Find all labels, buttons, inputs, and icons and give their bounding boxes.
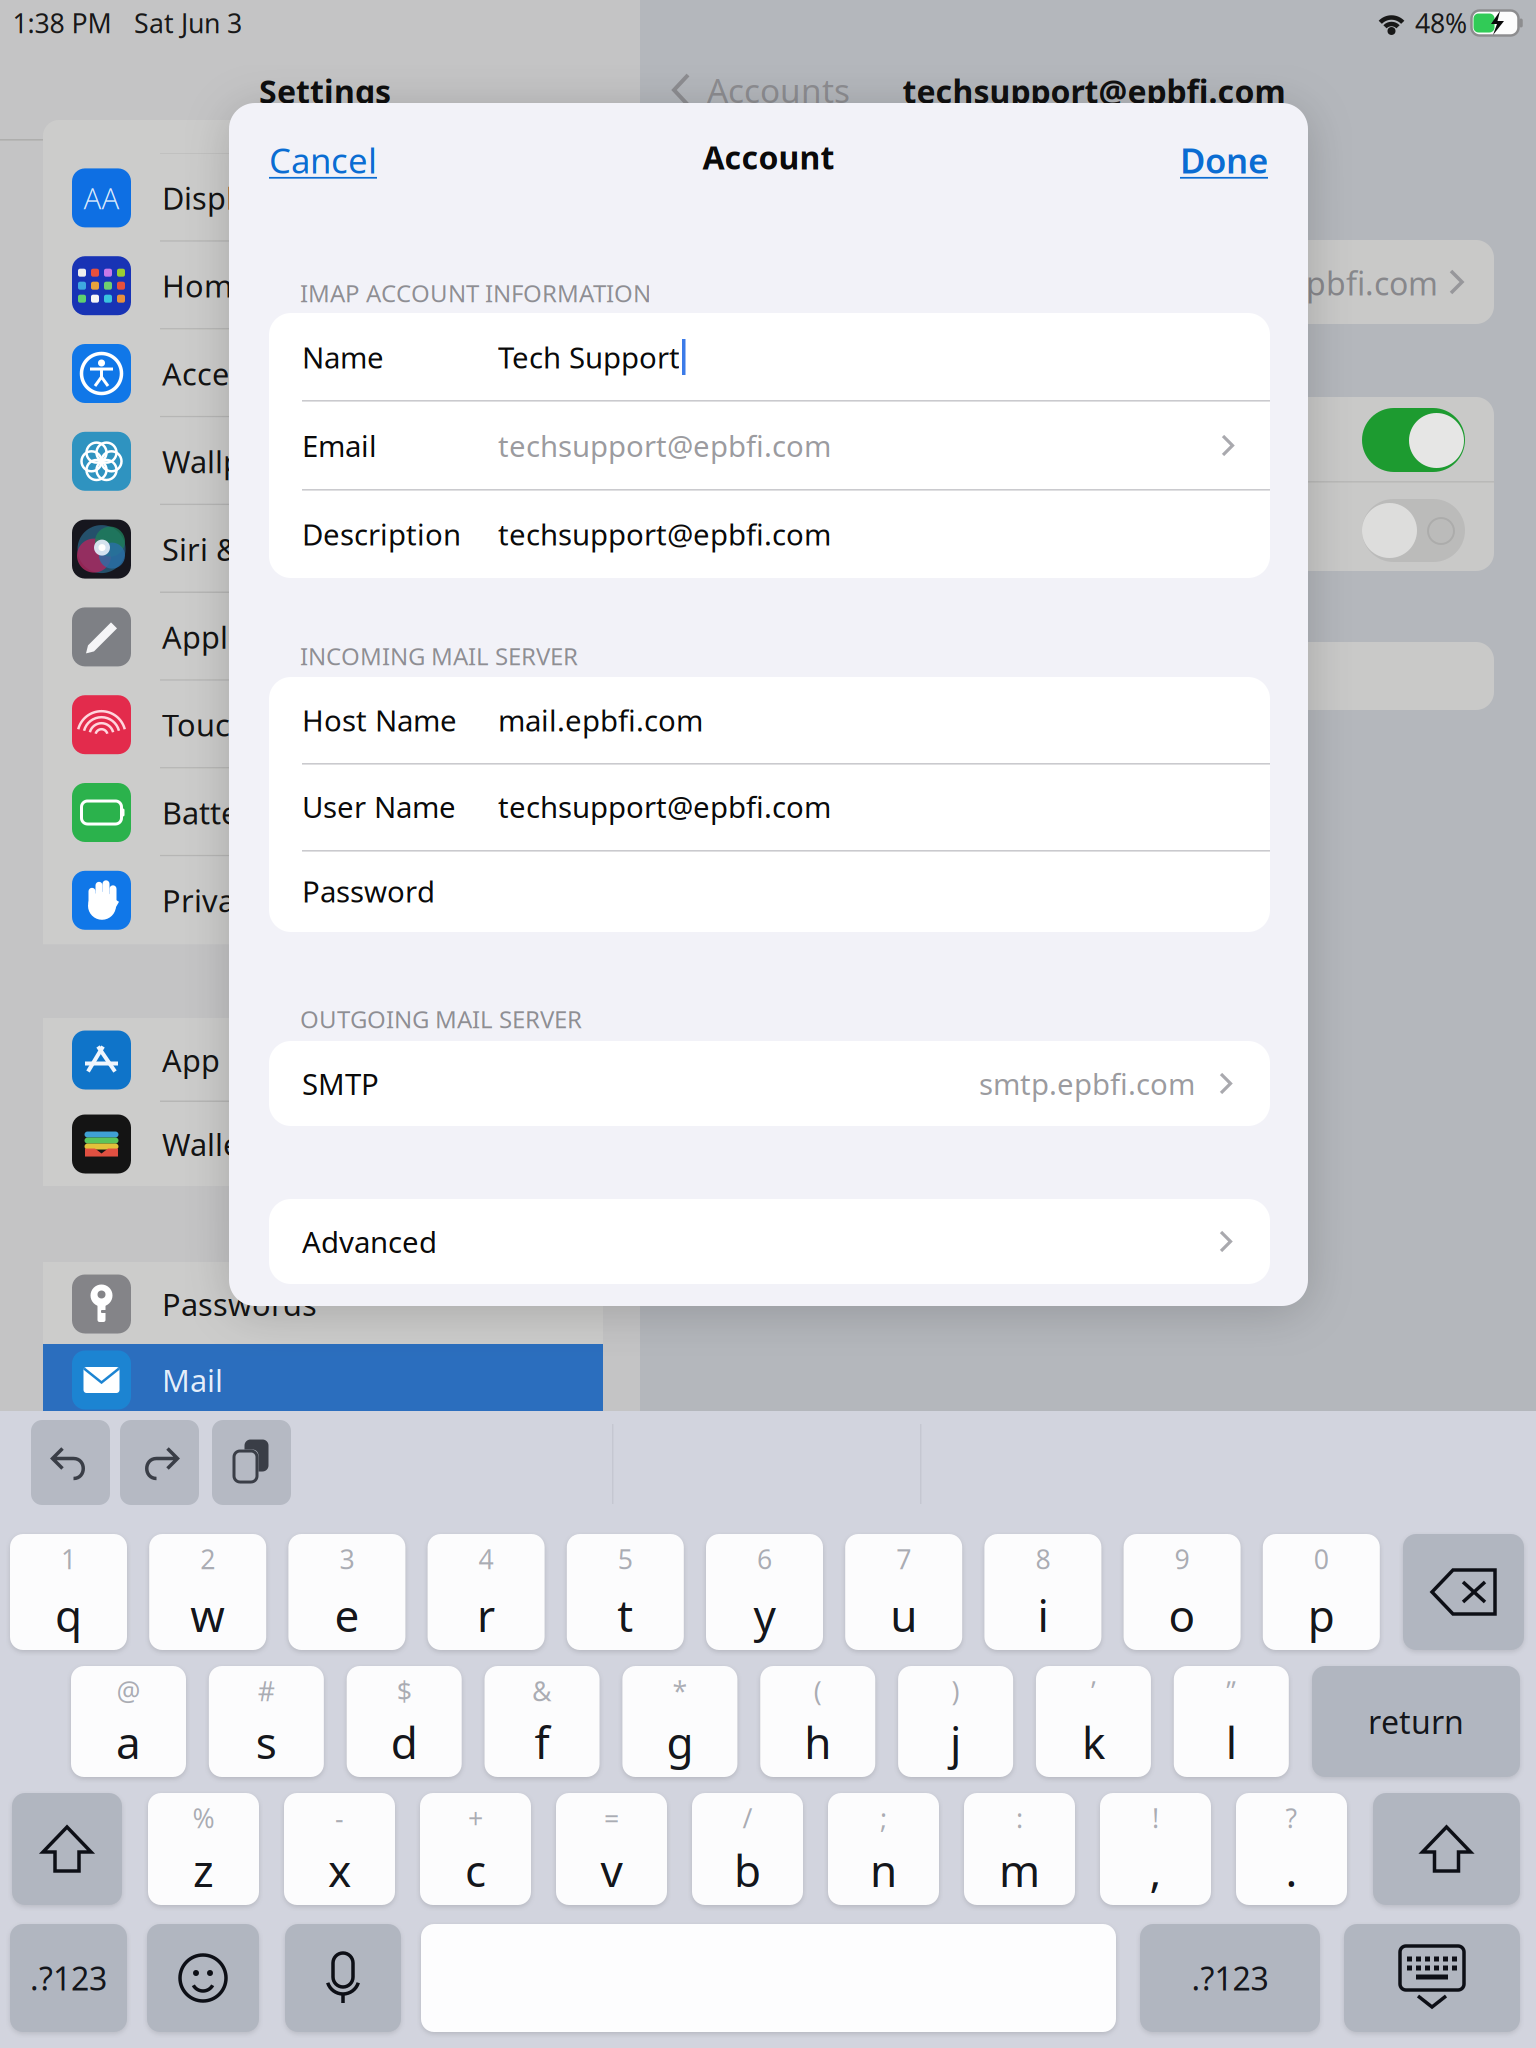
staticText: 9 bbox=[1175, 1541, 1190, 1577]
button[interactable]: 8 bbox=[984, 1534, 1101, 1650]
button[interactable]: return bbox=[1312, 1666, 1520, 1777]
button[interactable]: Email bbox=[269, 401, 1270, 490]
button[interactable]: 2 bbox=[149, 1534, 266, 1650]
staticText: Name bbox=[302, 337, 384, 376]
staticText: ’ bbox=[1091, 1673, 1096, 1709]
staticText: 0 bbox=[1314, 1541, 1329, 1577]
staticText: u bbox=[890, 1586, 917, 1644]
staticText: Tech Support bbox=[498, 337, 680, 376]
staticText: 6 bbox=[757, 1541, 772, 1577]
button[interactable]: paste bbox=[212, 1420, 291, 1505]
staticText: Passwords bbox=[162, 1284, 317, 1324]
staticText: return bbox=[1368, 1700, 1464, 1743]
button[interactable]: App S bbox=[43, 1018, 603, 1102]
button[interactable]: 0 bbox=[1263, 1534, 1380, 1650]
button[interactable]: ) bbox=[898, 1666, 1013, 1777]
button[interactable]: & bbox=[484, 1666, 599, 1777]
staticText: f bbox=[534, 1713, 549, 1771]
staticText: e bbox=[334, 1586, 359, 1644]
button[interactable]: kbd bbox=[1344, 1924, 1520, 2032]
staticText: Walle bbox=[162, 1124, 240, 1164]
button[interactable]: ” bbox=[1174, 1666, 1289, 1777]
staticText: mail.epbfi.com bbox=[498, 700, 703, 739]
staticText: 2 bbox=[200, 1541, 215, 1577]
button[interactable]: Accounts bbox=[671, 65, 861, 115]
button[interactable]: undo bbox=[31, 1420, 110, 1505]
button[interactable]: ; bbox=[828, 1793, 939, 1905]
staticText: Sat Jun 3 bbox=[134, 5, 242, 41]
button[interactable]: : bbox=[964, 1793, 1075, 1905]
button[interactable]: Touc bbox=[43, 681, 603, 769]
button[interactable]: Done bbox=[1148, 130, 1268, 190]
button[interactable]: * bbox=[622, 1666, 737, 1777]
button[interactable]: shift bbox=[1373, 1793, 1520, 1905]
staticText: Password bbox=[302, 871, 435, 910]
button[interactable]: Cancel bbox=[269, 130, 409, 190]
button[interactable]: - bbox=[284, 1793, 395, 1905]
staticText: Advanced bbox=[302, 1222, 437, 1261]
staticText: Settings bbox=[259, 70, 391, 112]
button[interactable]: % bbox=[148, 1793, 259, 1905]
button[interactable]: Hom bbox=[43, 242, 603, 330]
staticText: User Name bbox=[302, 787, 456, 826]
button[interactable]: Passwords bbox=[43, 1262, 603, 1346]
button[interactable]: = bbox=[556, 1793, 667, 1905]
button[interactable]: ( bbox=[760, 1666, 875, 1777]
staticText: ” bbox=[1226, 1673, 1236, 1709]
button[interactable]: 1 bbox=[10, 1534, 127, 1650]
button[interactable]: + bbox=[420, 1793, 531, 1905]
staticText: techsupport@epbfi.com bbox=[498, 787, 831, 826]
button[interactable]: Batte bbox=[43, 769, 603, 856]
button[interactable]: Wallp bbox=[43, 417, 603, 505]
button[interactable]: ’ bbox=[1036, 1666, 1151, 1777]
button[interactable]: Mail bbox=[43, 1344, 603, 1416]
staticText: j bbox=[950, 1713, 961, 1771]
staticText: Priva bbox=[162, 880, 235, 921]
button[interactable]: .?123 bbox=[1140, 1924, 1320, 2032]
staticText: Cancel bbox=[269, 137, 377, 183]
button[interactable]: 6 bbox=[706, 1534, 823, 1650]
button[interactable]: $ bbox=[347, 1666, 462, 1777]
button[interactable]: / bbox=[692, 1793, 803, 1905]
button[interactable]: redo bbox=[120, 1420, 199, 1505]
button[interactable]: SMTP bbox=[269, 1041, 1270, 1126]
staticText: $ bbox=[397, 1673, 412, 1709]
button[interactable]: Walle bbox=[43, 1102, 603, 1186]
staticText: / bbox=[742, 1800, 752, 1836]
staticText: b bbox=[734, 1841, 761, 1899]
button[interactable]: @ bbox=[71, 1666, 186, 1777]
staticText: Touc bbox=[162, 704, 230, 745]
button[interactable]: # bbox=[209, 1666, 324, 1777]
staticText: x bbox=[328, 1841, 351, 1899]
staticText: AA bbox=[83, 178, 119, 217]
button[interactable]: 7 bbox=[845, 1534, 962, 1650]
staticText: c bbox=[465, 1841, 486, 1899]
button[interactable]: 3 bbox=[288, 1534, 405, 1650]
button[interactable]: Apple bbox=[43, 593, 603, 681]
button[interactable]: ? bbox=[1236, 1793, 1347, 1905]
button[interactable]: 4 bbox=[428, 1534, 545, 1650]
button[interactable]: .?123 bbox=[10, 1924, 127, 2032]
staticText: Batte bbox=[162, 792, 238, 833]
button[interactable]: Acce bbox=[43, 330, 603, 417]
button[interactable]: emoji bbox=[147, 1924, 259, 2032]
staticText: ; bbox=[880, 1800, 887, 1836]
button[interactable]: Siri & bbox=[43, 505, 603, 593]
button[interactable]: AA bbox=[43, 154, 603, 242]
staticText: 48% bbox=[1415, 5, 1467, 41]
staticText: r bbox=[477, 1586, 495, 1644]
staticText: .?123 bbox=[1191, 1957, 1268, 1999]
button[interactable]: delete bbox=[1403, 1534, 1524, 1650]
button[interactable]: 5 bbox=[567, 1534, 684, 1650]
staticText: 8 bbox=[1035, 1541, 1050, 1577]
button[interactable]: mic bbox=[285, 1924, 401, 2032]
staticText: g bbox=[666, 1713, 693, 1771]
button[interactable]: Advanced bbox=[269, 1199, 1270, 1284]
button[interactable]: 9 bbox=[1124, 1534, 1241, 1650]
staticText: 5 bbox=[618, 1541, 633, 1577]
button[interactable]: shift bbox=[12, 1793, 122, 1905]
button[interactable]: Priva bbox=[43, 856, 603, 944]
button[interactable]: ! bbox=[1100, 1793, 1211, 1905]
staticText: d bbox=[391, 1713, 418, 1771]
